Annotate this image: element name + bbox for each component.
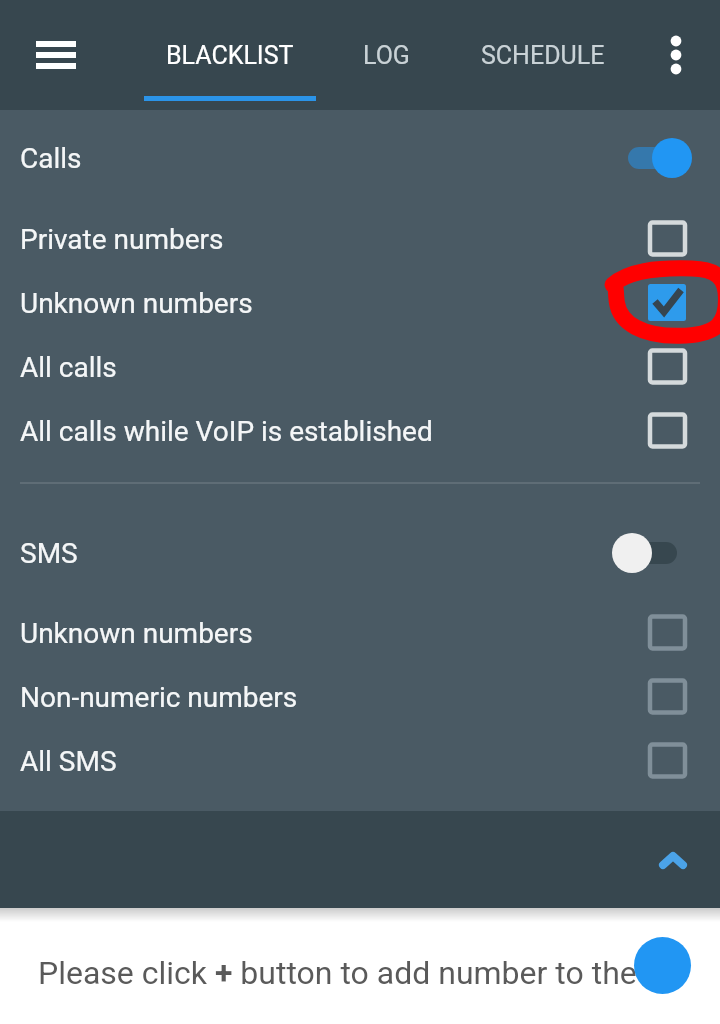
button[interactable]: Expand — [643, 831, 703, 891]
button[interactable]: Non-numeric numbers — [0, 665, 720, 729]
button[interactable]: Toggle All calls while VoIP is establish… — [648, 411, 720, 451]
button[interactable]: All calls while VoIP is established — [0, 399, 720, 463]
button[interactable]: Add number — [634, 937, 691, 994]
button[interactable]: SMS — [0, 521, 720, 585]
button[interactable]: Toggle Unknown numbers — [648, 283, 720, 323]
button[interactable]: Toggle Calls — [628, 136, 720, 180]
button[interactable]: All calls — [0, 335, 720, 399]
button[interactable]: LOG — [330, 0, 442, 110]
button[interactable]: Toggle Private numbers — [648, 219, 720, 259]
button[interactable]: Toggle Unknown numbers — [648, 613, 720, 653]
button[interactable]: Unknown numbers — [0, 601, 720, 665]
button[interactable]: More options — [650, 19, 702, 91]
staticText: Unknown numbers — [20, 287, 253, 320]
staticText: LOG — [363, 41, 410, 70]
staticText: Private numbers — [20, 223, 224, 256]
staticText: Non-numeric numbers — [20, 681, 298, 714]
staticText: All calls while VoIP is established — [20, 415, 433, 448]
staticText: SCHEDULE — [481, 41, 605, 70]
button[interactable]: Calls — [0, 126, 720, 190]
button[interactable]: SCHEDULE — [466, 0, 620, 110]
button[interactable]: Toggle All SMS — [648, 741, 720, 781]
staticText: BLACKLIST — [166, 41, 294, 70]
button[interactable]: All SMS — [0, 729, 720, 793]
button[interactable]: Toggle Non-numeric numbers — [648, 677, 720, 717]
staticText: Please click + button to add number to t… — [38, 954, 637, 992]
button[interactable]: Navigation menu — [20, 19, 91, 91]
button[interactable]: BLACKLIST — [144, 0, 316, 110]
staticText: Unknown numbers — [20, 617, 253, 650]
button[interactable]: Unknown numbers — [0, 271, 720, 335]
button[interactable]: Toggle All calls — [648, 347, 720, 387]
staticText: All SMS — [20, 745, 117, 778]
staticText: Calls — [20, 142, 82, 175]
button[interactable]: Private numbers — [0, 207, 720, 271]
button[interactable]: Toggle SMS — [628, 531, 720, 575]
staticText: All calls — [20, 351, 117, 384]
staticText: SMS — [20, 537, 78, 570]
